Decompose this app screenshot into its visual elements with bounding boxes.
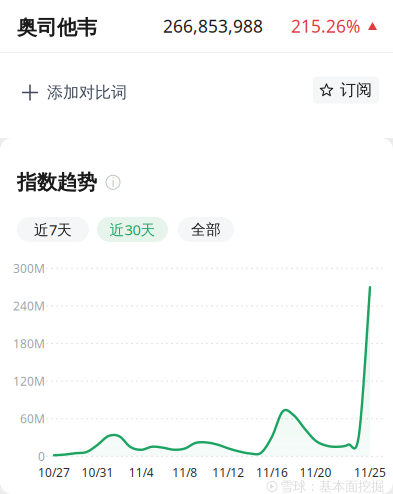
staticText: 120M bbox=[13, 373, 45, 389]
button[interactable]: 添加对比词 bbox=[0, 64, 127, 111]
staticText: 雪球：基本面挖掘 bbox=[280, 478, 384, 494]
staticText: 近7天 bbox=[34, 220, 72, 239]
staticText: 180M bbox=[13, 335, 45, 351]
staticText: 11/25 bbox=[354, 464, 386, 480]
staticText: 266,853,988 bbox=[163, 14, 263, 37]
button[interactable]: 近30天 bbox=[97, 217, 168, 242]
staticText: i bbox=[111, 174, 114, 190]
button[interactable]: 订阅 bbox=[313, 76, 379, 103]
staticText: 240M bbox=[13, 298, 45, 314]
staticText: 奥司他韦 bbox=[17, 15, 97, 40]
staticText: 60M bbox=[20, 411, 45, 427]
staticText: 11/8 bbox=[172, 464, 197, 480]
staticText: 11/20 bbox=[299, 464, 331, 480]
staticText: 添加对比词 bbox=[47, 83, 127, 102]
staticText: 11/12 bbox=[212, 464, 244, 480]
staticText: 全部 bbox=[191, 220, 221, 238]
staticText: 10/27 bbox=[38, 464, 70, 480]
button[interactable]: 近7天 bbox=[17, 217, 89, 242]
staticText: 215.26% bbox=[291, 14, 360, 37]
staticText: 指数趋势 bbox=[17, 170, 97, 195]
button[interactable]: 全部 bbox=[178, 217, 234, 242]
staticText: 近30天 bbox=[109, 220, 155, 239]
staticText: 订阅 bbox=[340, 80, 372, 100]
staticText: 300M bbox=[13, 260, 45, 276]
staticText: 10/31 bbox=[82, 464, 114, 480]
staticText: 11/16 bbox=[256, 464, 288, 480]
staticText: 0 bbox=[38, 448, 45, 464]
staticText: 11/4 bbox=[129, 464, 154, 480]
